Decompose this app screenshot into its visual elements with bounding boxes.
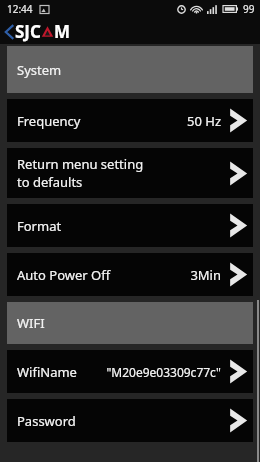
button[interactable]: Frequency [7,99,253,142]
staticText: Return menu setting [17,155,144,173]
staticText: M [54,20,71,43]
button[interactable]: Back [2,20,75,43]
staticText: WifiName [17,363,77,381]
staticText: Frequency [17,112,81,130]
button[interactable]: WifiName [7,350,253,393]
staticText: to defaults [17,173,83,191]
staticText: Auto Power Off [17,266,111,284]
staticText: 12:44 [7,2,33,16]
staticText: "M20e9e03309c77c" [106,364,221,380]
staticText: 50 Hz [187,112,221,130]
button[interactable]: Format [7,204,253,247]
staticText: 99 [243,2,255,16]
staticText: WIFI [17,314,45,332]
button[interactable]: Auto Power Off [7,253,253,296]
button[interactable]: System [7,46,253,93]
staticText: Password [17,412,76,430]
staticText: SJC [15,20,41,43]
button[interactable]: Return menu setting [7,148,253,198]
staticText: System [17,61,62,79]
button[interactable]: WIFI [7,302,253,344]
button[interactable]: Password [7,399,253,442]
staticText: Format [17,217,62,235]
staticText: 3Min [190,266,221,284]
